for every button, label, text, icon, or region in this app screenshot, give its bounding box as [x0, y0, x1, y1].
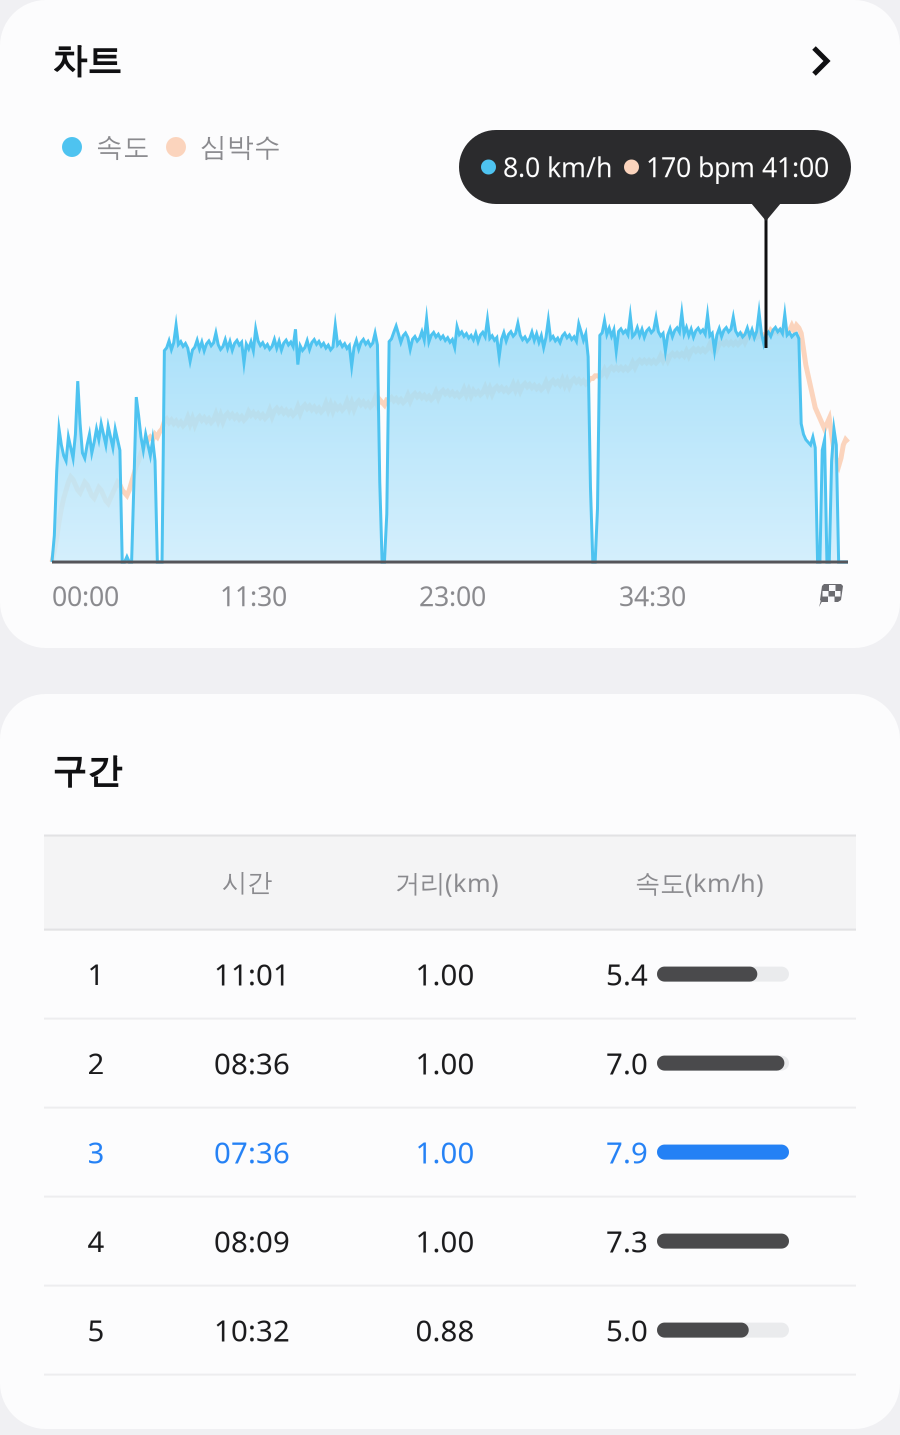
staticText: 08:36 — [214, 1044, 290, 1083]
staticText: 4 — [87, 1222, 104, 1261]
staticText: 구간 — [52, 750, 122, 793]
staticText: 1.00 — [415, 955, 474, 994]
staticText: 0.88 — [415, 1311, 474, 1350]
staticText: 11:30 — [220, 578, 287, 614]
staticText: 170 bpm — [639, 149, 755, 185]
staticText: 1 — [87, 955, 104, 994]
staticText: 1.00 — [415, 1133, 474, 1172]
staticText: 00:00 — [52, 578, 119, 614]
staticText: 차트 — [52, 40, 122, 82]
button[interactable]: 5 — [0, 1287, 900, 1374]
staticText: 08:09 — [214, 1222, 290, 1261]
staticText: 거리(km) — [395, 866, 499, 899]
button[interactable]: 4 — [0, 1198, 900, 1285]
staticText: 1.00 — [415, 1044, 474, 1083]
staticText: 5 — [87, 1311, 104, 1350]
staticText: 10:32 — [214, 1311, 290, 1350]
staticText: 3 — [87, 1133, 104, 1172]
staticText: 속도 — [96, 131, 150, 163]
staticText: 23:00 — [419, 578, 486, 614]
staticText: 7.9 — [606, 1133, 648, 1172]
button[interactable]: 2 — [0, 1020, 900, 1107]
button[interactable]: 차트 자세히 보기 — [796, 31, 846, 91]
staticText: 7.3 — [606, 1222, 648, 1261]
button[interactable]: 3 — [0, 1109, 900, 1196]
staticText: 41:00 — [755, 149, 829, 185]
staticText: 8.0 km/h — [496, 149, 612, 185]
button[interactable]: 1 — [0, 931, 900, 1018]
staticText: 07:36 — [214, 1133, 290, 1172]
staticText: 2 — [87, 1044, 104, 1083]
staticText: 11:01 — [214, 955, 290, 994]
staticText: 심박수 — [200, 131, 281, 163]
staticText: 5.0 — [606, 1311, 648, 1350]
staticText: 34:30 — [619, 578, 686, 614]
staticText: 1.00 — [415, 1222, 474, 1261]
staticText: 7.0 — [606, 1044, 648, 1083]
staticText: 5.4 — [606, 955, 648, 994]
staticText: 시간 — [222, 867, 272, 898]
staticText: 속도(km/h) — [635, 866, 764, 899]
